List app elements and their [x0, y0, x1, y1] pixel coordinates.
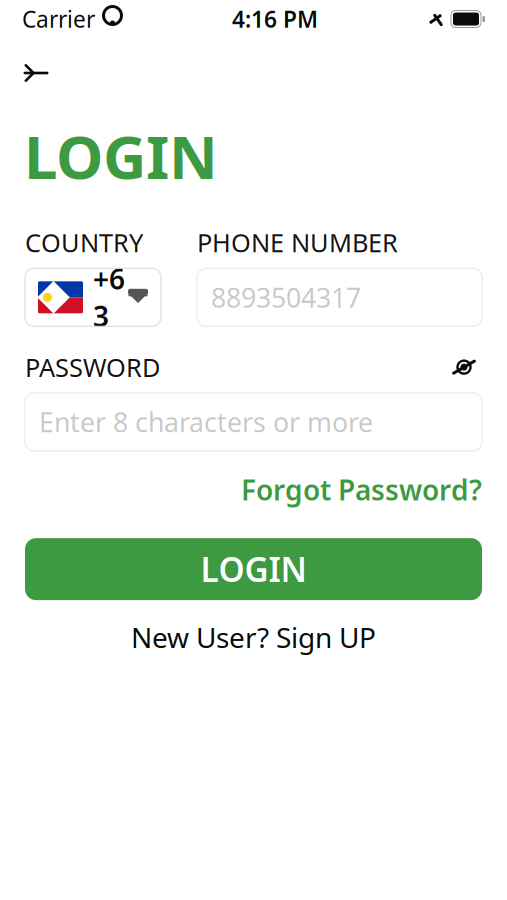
- staticText: Carrier: [22, 4, 95, 34]
- staticText: LOGIN: [200, 547, 306, 591]
- staticText: 8893504317: [211, 280, 361, 315]
- staticText: New User? Sign UP: [131, 619, 376, 656]
- button[interactable]: Enter 8 characters or more: [25, 393, 482, 451]
- button[interactable]: LOGIN: [25, 538, 482, 600]
- staticText: PHONE NUMBER: [197, 226, 398, 259]
- staticText: PASSWORD: [25, 350, 160, 384]
- staticText: 4:16 PM: [232, 4, 318, 34]
- button[interactable]: Back: [12, 52, 60, 94]
- button[interactable]: +63: [25, 268, 161, 326]
- button[interactable]: Show password: [446, 353, 482, 381]
- staticText: Enter 8 characters or more: [39, 404, 373, 440]
- button[interactable]: 8893504317: [197, 268, 482, 326]
- button[interactable]: Forgot Password?: [241, 471, 482, 508]
- staticText: +63: [93, 260, 125, 334]
- button[interactable]: New User? Sign UP: [0, 620, 507, 654]
- staticText: Forgot Password?: [241, 471, 482, 508]
- staticText: COUNTRY: [25, 226, 143, 259]
- staticText: LOGIN: [24, 116, 218, 196]
